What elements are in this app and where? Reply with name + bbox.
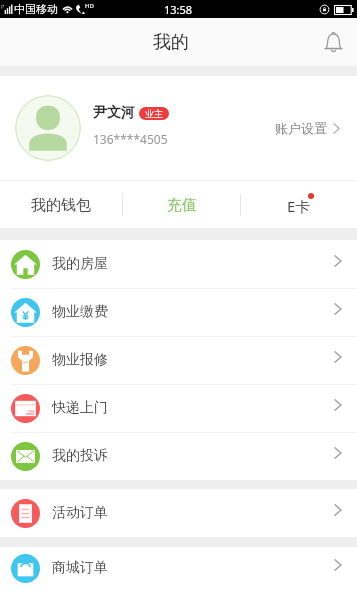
staticText: 账户设置: [275, 120, 327, 136]
button[interactable]: 我的钱包: [0, 181, 122, 228]
staticText: 我的投诉: [52, 447, 334, 465]
button[interactable]: 物业报修: [0, 336, 357, 384]
staticText: 尹文河: [93, 104, 135, 122]
button[interactable]: E卡: [241, 181, 357, 228]
staticText: 中国移动: [14, 2, 58, 16]
staticText: 活动订单: [52, 504, 334, 522]
button[interactable]: 我的投诉: [0, 432, 357, 480]
staticText: 我的钱包: [31, 196, 91, 215]
button[interactable]: 充值: [123, 181, 240, 228]
staticText: 业主: [145, 108, 163, 119]
button[interactable]: 尹文河: [0, 76, 357, 180]
staticText: 我的: [153, 31, 189, 54]
staticText: 物业缴费: [52, 303, 334, 321]
staticText: 136****4505: [93, 131, 168, 147]
button[interactable]: 活动订单: [0, 489, 357, 537]
staticText: 13:58: [164, 2, 193, 17]
staticText: E卡: [287, 196, 311, 216]
staticText: 物业报修: [52, 351, 334, 369]
staticText: 快递上门: [52, 399, 334, 417]
staticText: HD: [85, 2, 94, 10]
button[interactable]: 物业缴费: [0, 288, 357, 336]
staticText: 商城订单: [52, 559, 334, 577]
button[interactable]: Notifications: [309, 18, 357, 66]
staticText: 充值: [167, 196, 197, 215]
button[interactable]: 快递上门: [0, 384, 357, 432]
button[interactable]: 商城订单: [0, 547, 357, 589]
button[interactable]: 我的房屋: [0, 240, 357, 288]
staticText: 我的房屋: [52, 255, 334, 273]
button[interactable]: 账户设置: [275, 120, 340, 136]
